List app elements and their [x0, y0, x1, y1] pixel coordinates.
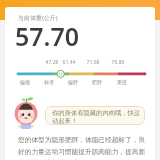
staticText: 61.44 — [60, 59, 78, 66]
staticText: 肥胖 — [89, 79, 105, 85]
staticText: 偏瘦 — [17, 79, 33, 85]
staticText: 偏胖 — [65, 79, 81, 85]
staticText: 当前体重(公斤) — [18, 14, 58, 22]
staticText: 你的身体有隐藏的内肉哦，快运 动起来！ — [52, 109, 144, 124]
staticText: 47.26 — [43, 59, 61, 66]
staticText: 76.80 — [109, 59, 127, 66]
staticText: 57.70 — [15, 19, 80, 53]
staticText: 71.68 — [84, 59, 102, 66]
staticText: 重度 — [114, 79, 130, 85]
staticText: 标准 — [41, 79, 57, 85]
staticText: 您的体型为隐形肥胖，体脂已经超标了，良好的力量运动习惯能提升肌肉能力，提高新陈代… — [18, 136, 146, 160]
